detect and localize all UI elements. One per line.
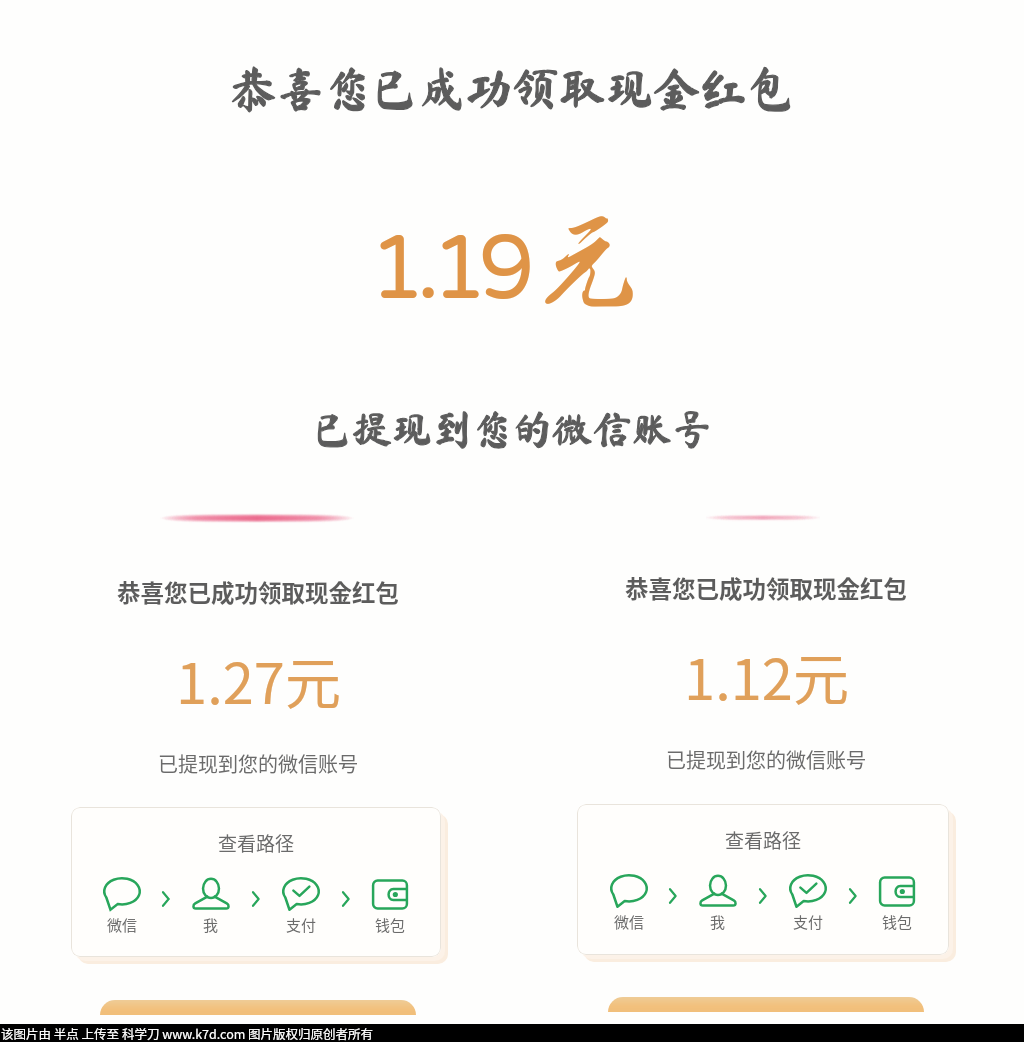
button[interactable]: 支付 bbox=[782, 874, 834, 933]
staticText: 支付 bbox=[286, 914, 317, 936]
button[interactable]: 钱包 bbox=[871, 874, 923, 933]
staticText: 1.27元 bbox=[176, 639, 341, 720]
staticText: 微信 bbox=[107, 914, 138, 936]
staticText: 恭喜您已成功领取现金红包 bbox=[625, 571, 907, 605]
staticText: 已提现到您的微信账号 bbox=[666, 745, 866, 774]
button[interactable]: 查看路径 bbox=[577, 804, 949, 955]
staticText: 我 bbox=[710, 911, 726, 933]
staticText: 钱包 bbox=[375, 914, 406, 936]
button[interactable]: 我 bbox=[692, 874, 744, 933]
button[interactable]: 我 bbox=[185, 877, 237, 936]
staticText: 元 bbox=[534, 203, 644, 325]
staticText: 恭喜您已成功领取现金红包 bbox=[117, 575, 399, 609]
staticText: 钱包 bbox=[882, 911, 913, 933]
button[interactable]: 微信 bbox=[96, 877, 148, 936]
button[interactable]: 立即提现 bbox=[100, 1000, 416, 1015]
button[interactable]: 查看路径 bbox=[71, 807, 441, 957]
button[interactable]: 微信 bbox=[603, 874, 655, 933]
staticText: 恭喜您已成功领取现金红包 bbox=[230, 65, 794, 112]
button[interactable]: 支付 bbox=[275, 877, 327, 936]
staticText: 已提现到您的微信账号 bbox=[158, 749, 358, 778]
staticText: 恭喜您已成功领取现金红包 bbox=[230, 65, 794, 112]
staticText: 已提现到您的微信账号 bbox=[312, 409, 712, 449]
staticText: 我 bbox=[203, 914, 219, 936]
staticText: 微信 bbox=[614, 911, 645, 933]
button[interactable]: 立即提现 bbox=[608, 997, 924, 1012]
staticText: 支付 bbox=[793, 911, 824, 933]
button[interactable]: 钱包 bbox=[364, 877, 416, 936]
staticText: 查看路径 bbox=[725, 826, 802, 854]
staticText: 该图片由 半点 上传至 科学刀 www.k7d.com 图片版权归原创者所有 bbox=[1, 1024, 374, 1042]
staticText: 查看路径 bbox=[218, 829, 295, 857]
staticText: 已提现到您的微信账号 bbox=[312, 409, 712, 449]
staticText: 1.19 bbox=[369, 215, 526, 323]
staticText: 1.12元 bbox=[684, 635, 849, 716]
